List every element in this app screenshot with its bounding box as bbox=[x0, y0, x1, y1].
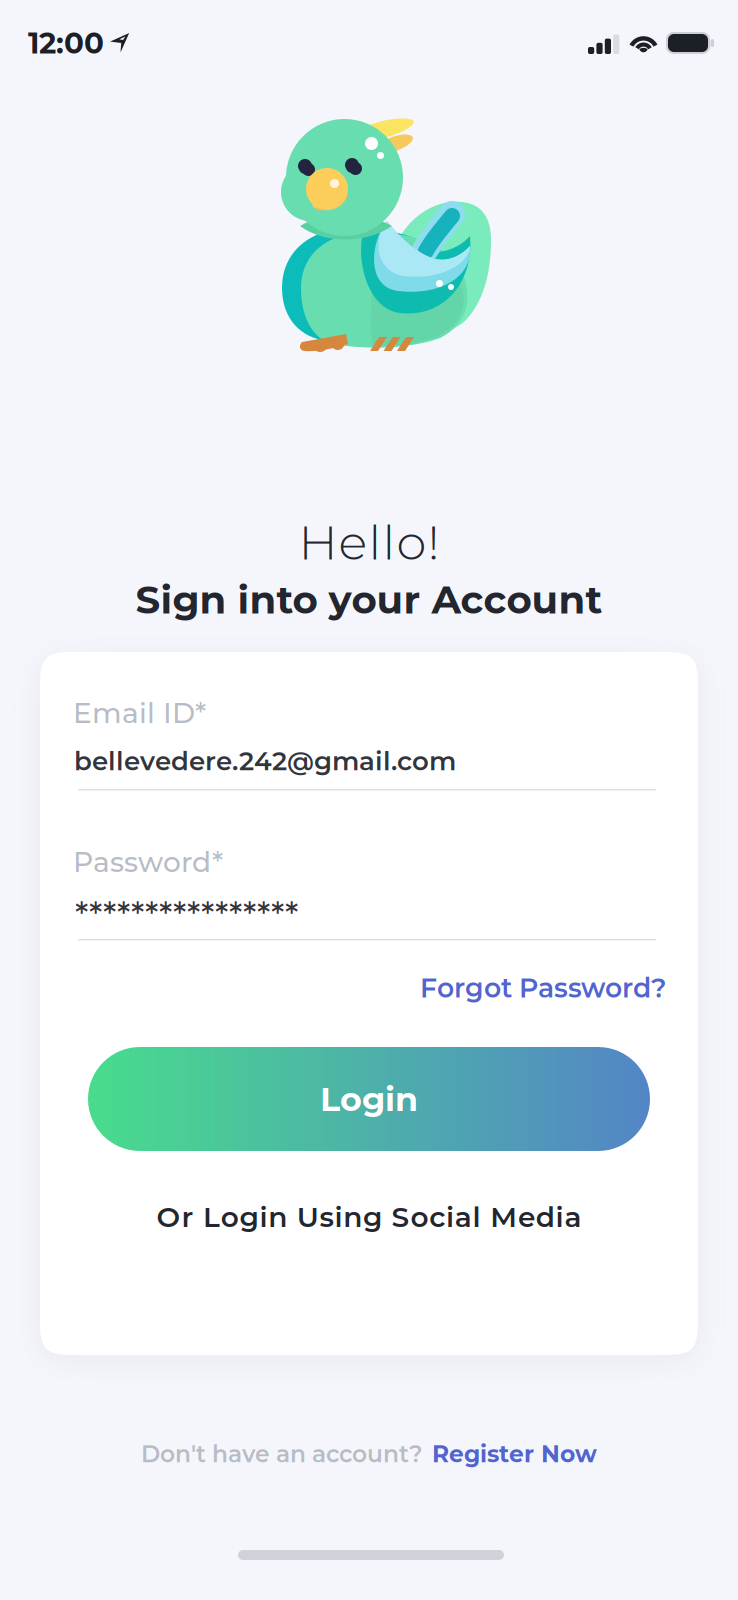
staticText: Hello! bbox=[298, 513, 439, 571]
staticText: 12:00 bbox=[28, 25, 104, 61]
button[interactable]: Login bbox=[88, 1047, 650, 1151]
staticText: bellevedere.242@gmail.com bbox=[74, 745, 456, 777]
staticText: **************** bbox=[75, 894, 298, 935]
staticText: Password* bbox=[73, 845, 223, 879]
staticText: Don't have an account? bbox=[141, 1440, 423, 1468]
staticText: Forgot Password? bbox=[420, 972, 666, 1004]
button[interactable]: Forgot Password? bbox=[406, 968, 666, 1008]
staticText: Register Now bbox=[432, 1440, 597, 1468]
staticText: Email ID* bbox=[73, 696, 206, 730]
staticText: Sign into your Account bbox=[135, 576, 602, 623]
button[interactable]: Don't have an account? bbox=[0, 1432, 738, 1476]
staticText: Or Login Using Social Media bbox=[157, 1200, 581, 1234]
staticText: Login bbox=[320, 1079, 418, 1119]
